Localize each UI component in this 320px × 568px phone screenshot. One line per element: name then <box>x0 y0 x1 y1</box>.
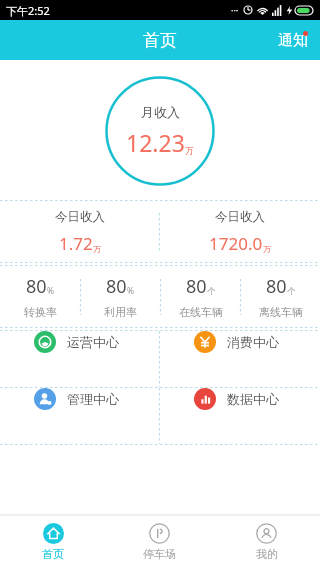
button[interactable]: 通知 <box>266 23 320 58</box>
button[interactable]: 停车场 <box>106 518 213 566</box>
staticText: % <box>127 285 135 297</box>
staticText: 今日收入 <box>215 209 265 225</box>
staticText: 运营中心 <box>67 334 119 350</box>
staticText: 12.23 <box>126 127 185 158</box>
staticText: ··· <box>231 4 239 16</box>
staticText: 通知 <box>278 31 308 50</box>
staticText: 万 <box>185 145 194 156</box>
staticText: 80 <box>106 274 127 299</box>
button[interactable]: 80 <box>241 269 320 324</box>
staticText: % <box>47 285 55 297</box>
button[interactable]: 80 <box>0 269 80 324</box>
staticText: 1720.0 <box>209 232 263 255</box>
staticText: 今日收入 <box>55 209 105 225</box>
button[interactable]: 今日收入 <box>160 203 320 261</box>
staticText: 我的 <box>256 547 278 561</box>
staticText: 转换率 <box>24 305 57 319</box>
staticText: 首页 <box>42 547 64 561</box>
button[interactable]: 今日收入 <box>0 203 159 261</box>
staticText: 万 <box>93 244 101 254</box>
button[interactable]: 数据中心 <box>160 388 320 410</box>
button[interactable]: 80 <box>161 269 240 324</box>
staticText: 80 <box>186 274 207 299</box>
staticText: 利用率 <box>104 305 137 319</box>
other: 我的 <box>256 523 277 544</box>
staticText: 首页 <box>143 30 177 51</box>
other: 首页 <box>43 523 64 544</box>
staticText: 个 <box>207 286 216 297</box>
staticText: 个 <box>287 286 296 297</box>
staticText: 80 <box>266 274 287 299</box>
other: 停车场 <box>149 523 170 544</box>
staticText: 管理中心 <box>67 391 119 407</box>
button[interactable]: 我的 <box>213 518 320 566</box>
staticText: 月收入 <box>141 104 180 120</box>
staticText: 在线车辆 <box>179 305 223 319</box>
staticText: 消费中心 <box>227 334 279 350</box>
staticText: 停车场 <box>143 547 176 561</box>
button[interactable]: 消费中心 <box>160 331 320 353</box>
button[interactable]: 运营中心 <box>0 331 159 353</box>
staticText: 80 <box>26 274 47 299</box>
button[interactable]: 管理中心 <box>0 388 159 410</box>
button[interactable]: 首页 <box>0 518 106 566</box>
staticText: 数据中心 <box>227 391 279 407</box>
staticText: 离线车辆 <box>259 305 303 319</box>
staticText: 1.72 <box>59 232 93 255</box>
staticText: 下午2:52 <box>6 3 50 18</box>
button[interactable]: 80 <box>81 269 160 324</box>
staticText: 万 <box>263 244 271 254</box>
